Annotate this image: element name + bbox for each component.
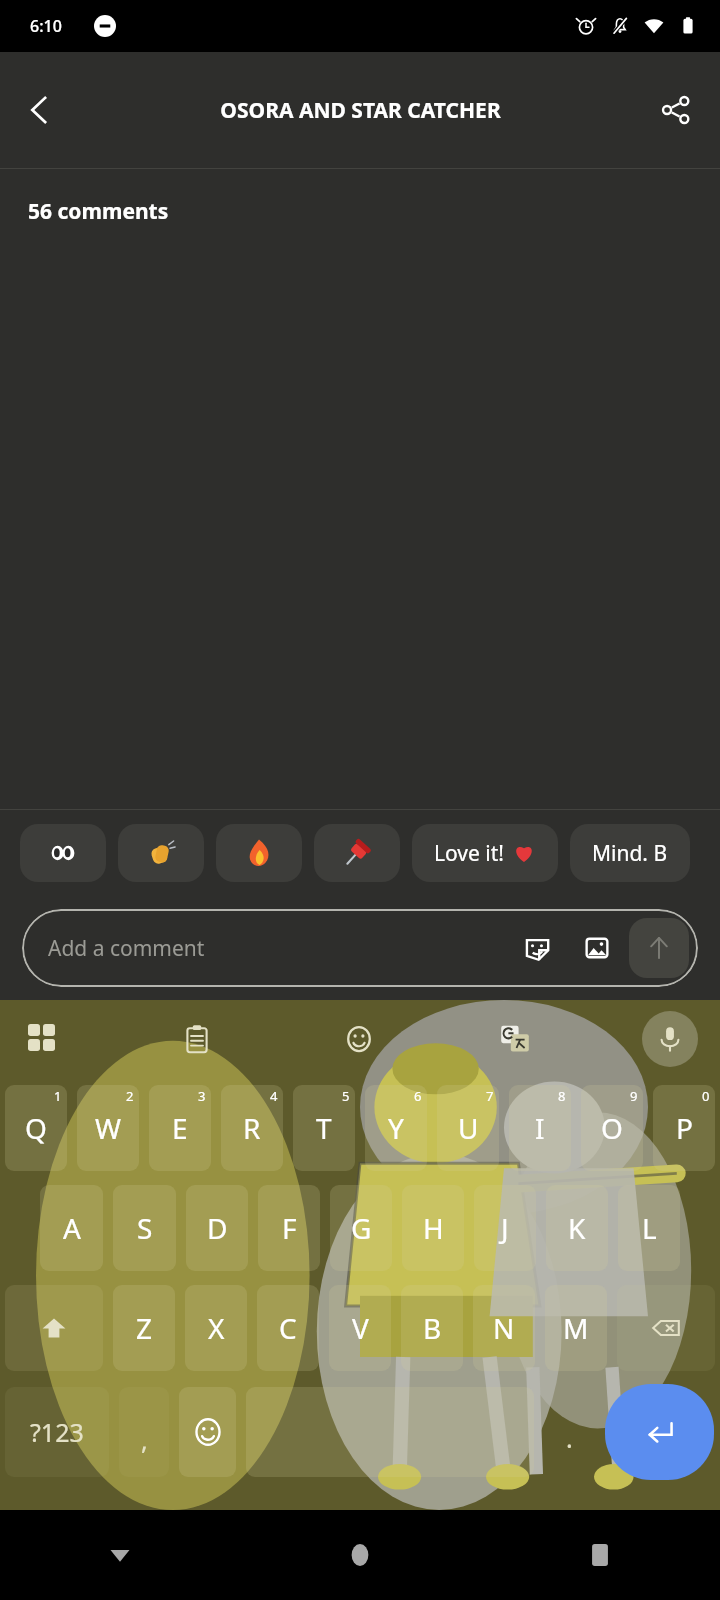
button[interactable]: Share bbox=[646, 80, 706, 140]
button[interactable]: R bbox=[221, 1085, 283, 1171]
staticText: A bbox=[63, 1209, 81, 1247]
button[interactable]: G bbox=[330, 1185, 392, 1271]
button[interactable]: Voice input bbox=[642, 1011, 698, 1067]
staticText: Add a comment bbox=[48, 934, 509, 963]
staticText: 4 bbox=[270, 1087, 278, 1105]
staticText: S bbox=[137, 1209, 153, 1247]
button[interactable]: . bbox=[544, 1387, 594, 1477]
staticText: . bbox=[566, 1421, 573, 1455]
staticText: J bbox=[501, 1209, 509, 1247]
staticText: R bbox=[243, 1109, 261, 1147]
button[interactable]: Reaction bbox=[314, 824, 400, 882]
button[interactable]: Reaction bbox=[118, 824, 204, 882]
staticText: T bbox=[316, 1109, 332, 1147]
staticText: E bbox=[172, 1109, 188, 1147]
button[interactable]: N bbox=[473, 1285, 535, 1371]
button[interactable]: S bbox=[113, 1185, 176, 1271]
staticText: B bbox=[423, 1309, 442, 1347]
button[interactable]: Emoji bbox=[332, 1012, 386, 1066]
staticText: V bbox=[352, 1309, 369, 1347]
staticText: L bbox=[642, 1209, 657, 1247]
staticText: H bbox=[423, 1209, 444, 1247]
staticText: Y bbox=[388, 1109, 404, 1147]
button[interactable]: Home bbox=[240, 1510, 480, 1600]
button[interactable]: Q bbox=[5, 1085, 67, 1171]
staticText: ?123 bbox=[30, 1415, 84, 1449]
button[interactable]: Hide keyboard bbox=[0, 1510, 240, 1600]
staticText: 56 comments bbox=[28, 197, 169, 226]
button[interactable]: Emoji bbox=[179, 1387, 236, 1477]
staticText: 1 bbox=[54, 1087, 62, 1105]
staticText: 0 bbox=[702, 1087, 710, 1105]
button[interactable]: M bbox=[545, 1285, 607, 1371]
staticText: I bbox=[535, 1109, 545, 1147]
button[interactable]: C bbox=[257, 1285, 319, 1371]
staticText: 2 bbox=[126, 1087, 134, 1105]
staticText: 9 bbox=[630, 1087, 638, 1105]
button[interactable]: Add a comment bbox=[22, 909, 698, 987]
staticText: Mind. B bbox=[592, 839, 668, 868]
button[interactable]: Love it! bbox=[412, 824, 558, 882]
staticText: C bbox=[279, 1309, 297, 1347]
button[interactable]: Add sticker bbox=[509, 920, 565, 976]
button[interactable]: Mind. B bbox=[570, 824, 690, 882]
staticText: Z bbox=[136, 1309, 153, 1347]
staticText: K bbox=[568, 1209, 586, 1247]
staticText: 5 bbox=[342, 1087, 350, 1105]
button[interactable]: E bbox=[149, 1085, 211, 1171]
button[interactable]: U bbox=[437, 1085, 499, 1171]
staticText: 3 bbox=[198, 1087, 206, 1105]
button[interactable]: O bbox=[581, 1085, 643, 1171]
button[interactable]: Translate bbox=[488, 1012, 542, 1066]
staticText: D bbox=[207, 1209, 228, 1247]
staticText: 6 bbox=[414, 1087, 422, 1105]
button[interactable]: Clipboard bbox=[170, 1012, 224, 1066]
button[interactable]: Reaction bbox=[216, 824, 302, 882]
staticText: Q bbox=[25, 1109, 47, 1147]
button[interactable]: Recent apps bbox=[480, 1510, 720, 1600]
button[interactable]: ?123 bbox=[5, 1387, 109, 1477]
staticText: , bbox=[141, 1423, 148, 1457]
button[interactable]: A bbox=[40, 1185, 103, 1271]
button[interactable]: Shift bbox=[5, 1285, 103, 1371]
button[interactable]: Y bbox=[365, 1085, 427, 1171]
button[interactable]: B bbox=[401, 1285, 463, 1371]
button[interactable]: W bbox=[77, 1085, 139, 1171]
button[interactable]: Space bbox=[246, 1387, 534, 1477]
staticText: O bbox=[601, 1109, 623, 1147]
button[interactable]: D bbox=[186, 1185, 248, 1271]
staticText: P bbox=[676, 1109, 693, 1147]
button[interactable]: Add image bbox=[569, 920, 625, 976]
staticText: Love it! bbox=[434, 839, 504, 868]
button[interactable]: X bbox=[185, 1285, 247, 1371]
button[interactable]: Enter bbox=[605, 1384, 714, 1480]
staticText: G bbox=[351, 1209, 372, 1247]
staticText: F bbox=[282, 1209, 297, 1247]
button[interactable]: Backspace bbox=[617, 1285, 715, 1371]
button[interactable]: V bbox=[329, 1285, 391, 1371]
staticText: M bbox=[563, 1309, 589, 1347]
button[interactable]: Back bbox=[8, 78, 72, 142]
button[interactable]: F bbox=[258, 1185, 320, 1271]
button[interactable]: J bbox=[474, 1185, 536, 1271]
staticText: 8 bbox=[558, 1087, 566, 1105]
button[interactable]: Reaction bbox=[20, 824, 106, 882]
button[interactable]: H bbox=[402, 1185, 464, 1271]
button[interactable]: I bbox=[509, 1085, 571, 1171]
button[interactable]: Z bbox=[113, 1285, 175, 1371]
button[interactable]: , bbox=[119, 1387, 169, 1477]
staticText: 6:10 bbox=[30, 15, 62, 37]
staticText: 7 bbox=[486, 1087, 494, 1105]
staticText: OSORA AND STAR CATCHER bbox=[220, 96, 501, 125]
staticText: N bbox=[493, 1309, 515, 1347]
button[interactable]: K bbox=[546, 1185, 608, 1271]
staticText: X bbox=[208, 1309, 225, 1347]
button[interactable]: Keyboard menu bbox=[16, 1012, 70, 1066]
button[interactable]: T bbox=[293, 1085, 355, 1171]
button[interactable]: P bbox=[653, 1085, 715, 1171]
staticText: W bbox=[95, 1109, 122, 1147]
button[interactable]: Send bbox=[629, 918, 689, 978]
button[interactable]: L bbox=[618, 1185, 680, 1271]
staticText: U bbox=[458, 1109, 479, 1147]
